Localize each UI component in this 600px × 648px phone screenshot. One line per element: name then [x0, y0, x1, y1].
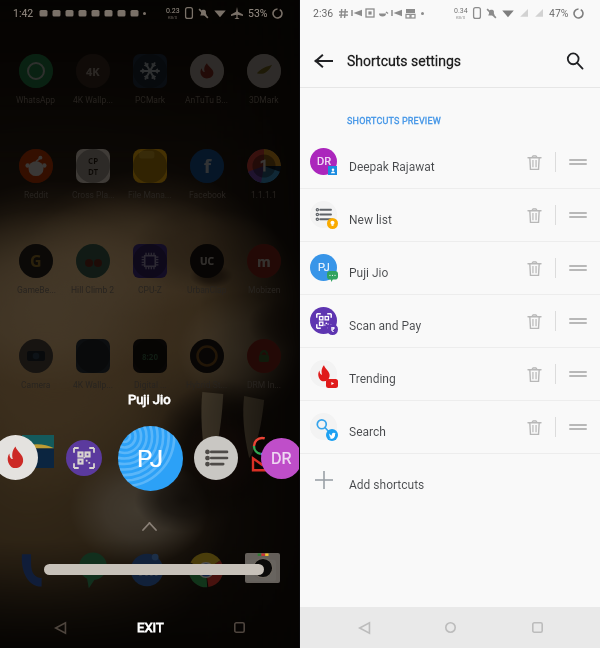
staticText: Digital ... — [134, 380, 167, 390]
button[interactable]: Hill Climb 2 — [76, 244, 110, 278]
staticText: ₹ — [331, 326, 335, 334]
button[interactable]: File Mana... — [133, 149, 167, 183]
button[interactable]: Delete — [513, 242, 555, 294]
button[interactable]: Reorder — [556, 401, 600, 453]
button[interactable]: Deepak Rajawat — [261, 438, 302, 479]
button[interactable]: Camera — [19, 339, 53, 373]
staticText: GameBe... — [17, 285, 56, 295]
staticText: PJ — [137, 445, 164, 473]
staticText: m — [257, 252, 271, 271]
staticText: Hybrid St... — [186, 380, 228, 390]
staticText: Search — [349, 425, 386, 439]
button[interactable]: Recents — [216, 607, 262, 648]
button[interactable]: Back — [341, 607, 387, 648]
button[interactable]: Facebook — [190, 149, 224, 183]
button[interactable]: Slider — [44, 564, 264, 575]
button[interactable]: New list — [194, 436, 238, 480]
staticText: Scan and Pay — [349, 319, 422, 333]
button[interactable]: UrbanClap — [190, 244, 224, 278]
staticText: SHORTCUTS PREVIEW — [347, 116, 441, 127]
button[interactable]: Camera — [245, 553, 280, 583]
button[interactable]: 1.1.1.1 — [247, 149, 281, 183]
button[interactable]: Reorder — [556, 348, 600, 400]
button[interactable]: Messages — [72, 549, 114, 591]
staticText: Camera — [21, 380, 51, 390]
staticText: UC — [200, 254, 214, 268]
button[interactable]: Phone — [11, 549, 53, 591]
staticText: 4K Wallp... — [73, 380, 113, 390]
staticText: 4K — [86, 64, 100, 79]
staticText: G — [30, 250, 42, 272]
button[interactable]: Chrome — [185, 549, 227, 591]
staticText: CPU-Z — [138, 285, 162, 295]
button[interactable]: New list — [300, 189, 600, 241]
staticText: 2:36 — [313, 7, 334, 19]
button[interactable]: Chrome — [240, 549, 282, 591]
button[interactable]: Cross Pla... — [76, 149, 110, 183]
staticText: DR — [271, 449, 292, 468]
button[interactable]: DRM In... — [247, 339, 281, 373]
button[interactable]: ₹ — [300, 295, 600, 347]
staticText: 4K Wallp... — [73, 95, 113, 105]
staticText: sm — [137, 561, 158, 579]
button[interactable]: Recents — [514, 607, 560, 648]
button[interactable]: Delete — [513, 189, 555, 241]
button[interactable]: Samsung — [126, 549, 168, 591]
staticText: File Mana... — [128, 190, 172, 200]
staticText: Mobizen — [248, 285, 281, 295]
staticText: Deepak Rajawat — [349, 160, 435, 174]
button[interactable]: EXIT — [120, 607, 180, 648]
staticText: 0.23 — [166, 7, 180, 15]
button[interactable]: Trending — [0, 435, 38, 480]
button[interactable]: Scan and Pay — [66, 440, 102, 476]
button[interactable]: AnTuTu B... — [190, 54, 224, 88]
button[interactable]: 4K Wallp... — [76, 54, 110, 88]
staticText: 53% — [248, 7, 268, 19]
staticText: DT — [88, 166, 99, 177]
staticText: Cross Pla... — [72, 190, 115, 200]
staticText: KB/S — [168, 15, 178, 20]
button[interactable]: 3DMark — [247, 54, 281, 88]
button[interactable]: Mobizen — [247, 244, 281, 278]
staticText: AnTuTu B... — [185, 95, 229, 105]
button[interactable]: Puji Jio — [118, 426, 183, 491]
button[interactable]: PJ — [300, 242, 600, 294]
button[interactable]: Home — [427, 607, 473, 648]
button[interactable]: Back — [37, 607, 83, 648]
button[interactable]: Add shortcuts — [300, 454, 600, 506]
button[interactable]: Search — [552, 38, 598, 84]
button[interactable]: GameBe... — [19, 244, 53, 278]
button[interactable]: Back — [300, 38, 346, 84]
button[interactable]: Reddit — [19, 149, 53, 183]
button[interactable]: PCMark — [133, 54, 167, 88]
button[interactable]: Delete — [513, 401, 555, 453]
staticText: 1.1.1.1 — [251, 190, 277, 200]
button[interactable]: Reorder — [556, 189, 600, 241]
staticText: Reddit — [24, 190, 49, 200]
staticText: New list — [349, 213, 392, 227]
staticText: 3DMark — [249, 95, 279, 105]
button[interactable]: 4K Wallp... — [76, 339, 110, 373]
staticText: f — [204, 154, 211, 179]
button[interactable]: Hybrid St... — [190, 339, 224, 373]
button[interactable]: Search — [300, 401, 600, 453]
staticText: 0.34 — [454, 7, 468, 15]
button[interactable]: DR — [300, 136, 600, 188]
staticText: Trending — [349, 372, 396, 386]
staticText: Puji Jio — [128, 392, 171, 407]
staticText: PCMark — [135, 95, 166, 105]
button[interactable]: Reorder — [556, 136, 600, 188]
button[interactable]: Delete — [513, 348, 555, 400]
button[interactable]: Trending — [300, 348, 600, 400]
button[interactable]: Reorder — [556, 295, 600, 347]
staticText: EXIT — [137, 620, 164, 635]
button[interactable]: Reorder — [556, 242, 600, 294]
button[interactable]: Delete — [513, 136, 555, 188]
button[interactable]: CPU-Z — [133, 244, 167, 278]
staticText: DR — [317, 155, 331, 168]
staticText: WhatsApp — [16, 95, 56, 105]
staticText: Facebook — [189, 190, 226, 200]
button[interactable]: Digital ... — [133, 339, 167, 373]
button[interactable]: Delete — [513, 295, 555, 347]
button[interactable]: WhatsApp — [19, 54, 53, 88]
